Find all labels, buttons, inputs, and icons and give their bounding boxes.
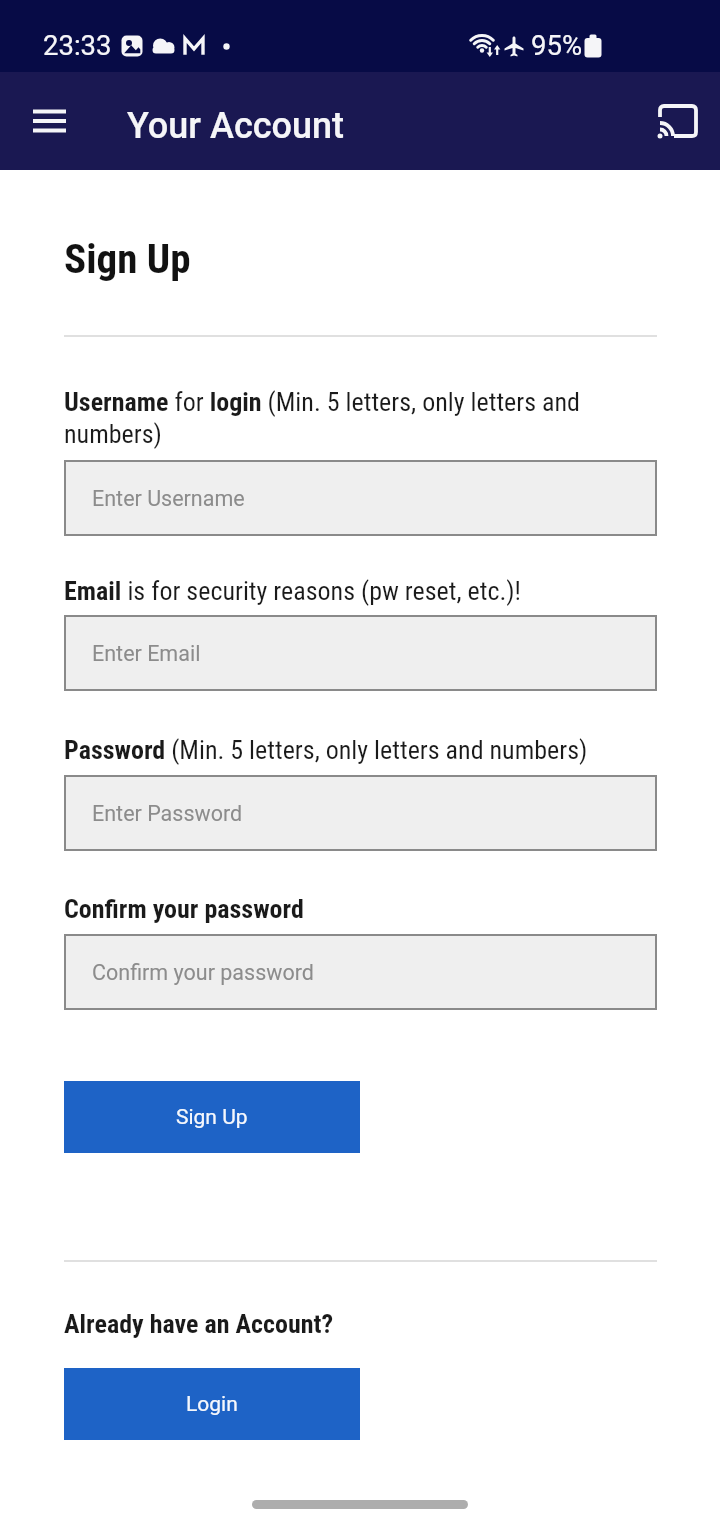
staticText: Confirm your password	[92, 960, 314, 985]
button[interactable]: Enter Email	[64, 615, 657, 691]
staticText: Password (Min. 5 letters, only letters a…	[64, 735, 588, 765]
staticText: Enter Email	[92, 641, 201, 666]
button[interactable]	[648, 91, 708, 151]
staticText: Username for login (Min. 5 letters, only…	[64, 387, 657, 450]
button[interactable]: Sign Up	[64, 1081, 360, 1153]
button[interactable]: Login	[64, 1368, 360, 1440]
staticText: Email is for security reasons (pw reset,…	[64, 576, 521, 606]
button[interactable]: Enter Password	[64, 775, 657, 851]
staticText: 23:33	[43, 29, 112, 61]
staticText: Login	[186, 1392, 238, 1417]
staticText: Sign Up	[176, 1105, 248, 1130]
button[interactable]: Confirm your password	[64, 934, 657, 1010]
staticText: Confirm your password	[64, 894, 304, 924]
staticText: Already have an Account?	[64, 1309, 334, 1339]
staticText: Sign Up	[64, 235, 191, 283]
staticText: Enter Username	[92, 486, 245, 511]
staticText: Enter Password	[92, 801, 243, 826]
button[interactable]: Enter Username	[64, 460, 657, 536]
button[interactable]	[20, 92, 78, 150]
staticText: Your Account	[127, 105, 345, 147]
staticText: 95%	[531, 29, 583, 61]
